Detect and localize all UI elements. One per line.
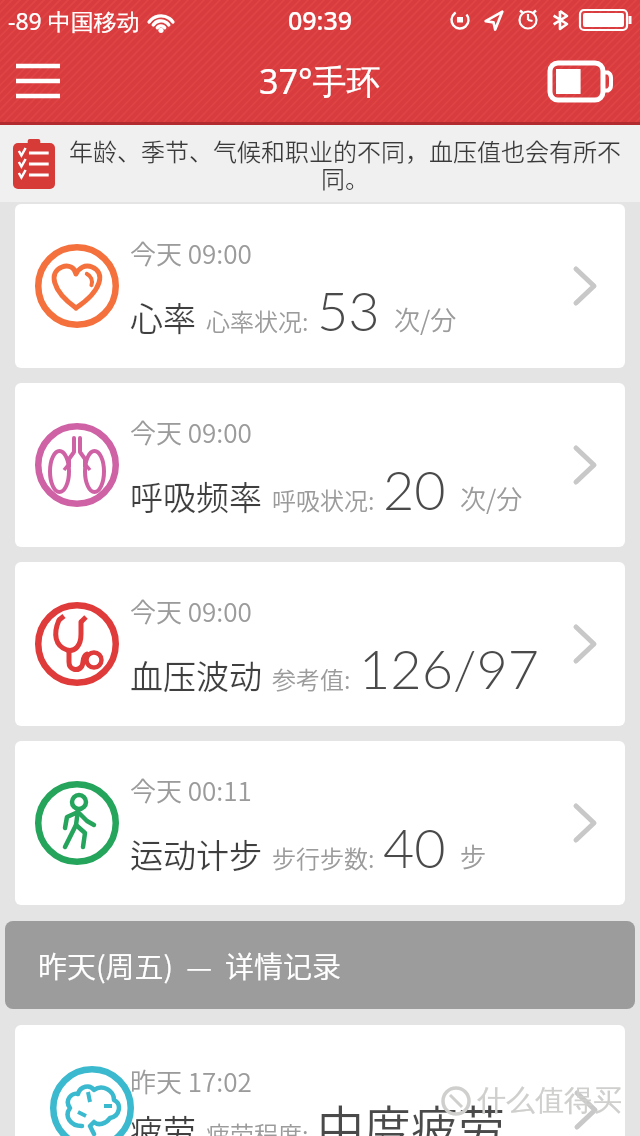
staticText: 今天 09:00 — [130, 234, 252, 272]
staticText: 37°手环 — [259, 58, 381, 104]
staticText: 参考值: — [272, 661, 351, 696]
staticText: 疲劳 — [130, 1106, 196, 1136]
staticText: 53 — [317, 278, 380, 343]
button[interactable]: 今天 09:00 — [15, 562, 625, 726]
staticText: 20 — [383, 457, 446, 522]
staticText: 40 — [383, 815, 446, 880]
staticText: 步 — [460, 837, 487, 875]
staticText: 呼吸频率 — [130, 472, 262, 520]
staticText: 昨天(周五) — 详情记录 — [38, 944, 341, 986]
staticText: 次/分 — [394, 300, 457, 338]
button[interactable] — [12, 55, 64, 107]
staticText: 心率 — [130, 293, 196, 341]
button[interactable]: 今天 00:11 — [15, 741, 625, 905]
staticText: 心率状况: — [206, 303, 309, 338]
staticText: 09:39 — [288, 3, 353, 37]
staticText: 次/分 — [460, 479, 523, 517]
button[interactable]: 今天 09:00 — [15, 204, 625, 368]
staticText: -89 中国移动 — [8, 5, 140, 36]
staticText: 今天 09:00 — [130, 592, 252, 630]
button[interactable]: 昨天(周五) — 详情记录 — [5, 921, 635, 1009]
button[interactable]: 今天 09:00 — [15, 383, 625, 547]
staticText: 什么值得买 — [477, 1082, 622, 1119]
staticText: 疲劳程度: — [206, 1116, 309, 1136]
staticText: 今天 00:11 — [130, 771, 252, 809]
staticText: 中度疲劳 — [317, 1090, 505, 1136]
staticText: 昨天 17:02 — [130, 1062, 252, 1100]
button[interactable]: 昨天 17:02 — [15, 1025, 625, 1136]
staticText: 今天 09:00 — [130, 413, 252, 451]
staticText: 126/97 — [359, 636, 540, 701]
staticText: 步行步数: — [272, 840, 375, 875]
staticText: 运动计步 — [130, 830, 262, 878]
staticText: 年龄、季节、气候和职业的不同，血压值也会有所不 同。 — [69, 133, 621, 195]
staticText: 血压波动 — [130, 651, 262, 699]
staticText: 呼吸状况: — [272, 482, 375, 517]
button[interactable] — [550, 63, 612, 100]
